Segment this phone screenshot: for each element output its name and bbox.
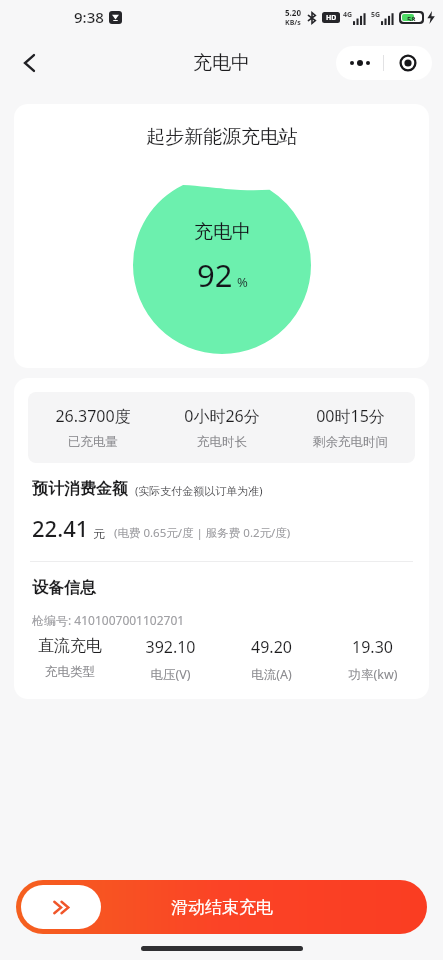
staticText: 直流充电: [38, 636, 102, 656]
staticText: 已充电量: [68, 434, 118, 450]
staticText: 49.20: [251, 636, 292, 658]
staticText: 19.30: [352, 636, 393, 658]
staticText: 26.3700度: [55, 405, 131, 427]
staticText: (电费 0.65元/度 | 服务费 0.2元/度): [114, 525, 291, 541]
staticText: 充电类型: [45, 664, 95, 680]
staticText: 剩余充电时间: [313, 434, 388, 450]
button[interactable]: 滑动结束充电: [16, 880, 427, 934]
staticText: %: [237, 273, 248, 291]
staticText: 设备信息: [32, 578, 96, 598]
staticText: 58: [407, 14, 416, 21]
staticText: 4G: [343, 10, 353, 20]
staticText: HD: [326, 13, 337, 23]
staticText: 392.10: [145, 636, 196, 658]
button[interactable]: Target: [384, 46, 432, 80]
staticText: 5.20: [285, 7, 301, 18]
staticText: 00时15分: [316, 405, 385, 427]
staticText: 9:38: [74, 7, 104, 27]
staticText: 充电中: [194, 220, 251, 244]
staticText: 充电中: [193, 51, 250, 75]
staticText: 0小时26分: [184, 405, 260, 427]
staticText: 22.41: [32, 513, 89, 543]
staticText: 充电时长: [197, 434, 247, 450]
button[interactable]: More options: [336, 46, 383, 80]
staticText: 预计消费金额: [32, 479, 128, 499]
staticText: 元: [93, 526, 105, 541]
staticText: (实际支付金额以订单为准): [135, 483, 263, 498]
staticText: 92: [197, 254, 233, 296]
button[interactable]: Back: [8, 41, 52, 85]
staticText: 枪编号: 4101007001102701: [32, 612, 185, 628]
staticText: 功率(kw): [348, 666, 398, 683]
staticText: 滑动结束充电: [171, 897, 273, 918]
staticText: 电流(A): [251, 666, 292, 683]
staticText: 起步新能源充电站: [146, 125, 298, 149]
staticText: KB/s: [285, 18, 301, 28]
button[interactable]: Slide to stop charging: [21, 885, 101, 929]
staticText: 电压(V): [150, 666, 191, 683]
staticText: 5G: [371, 10, 381, 20]
